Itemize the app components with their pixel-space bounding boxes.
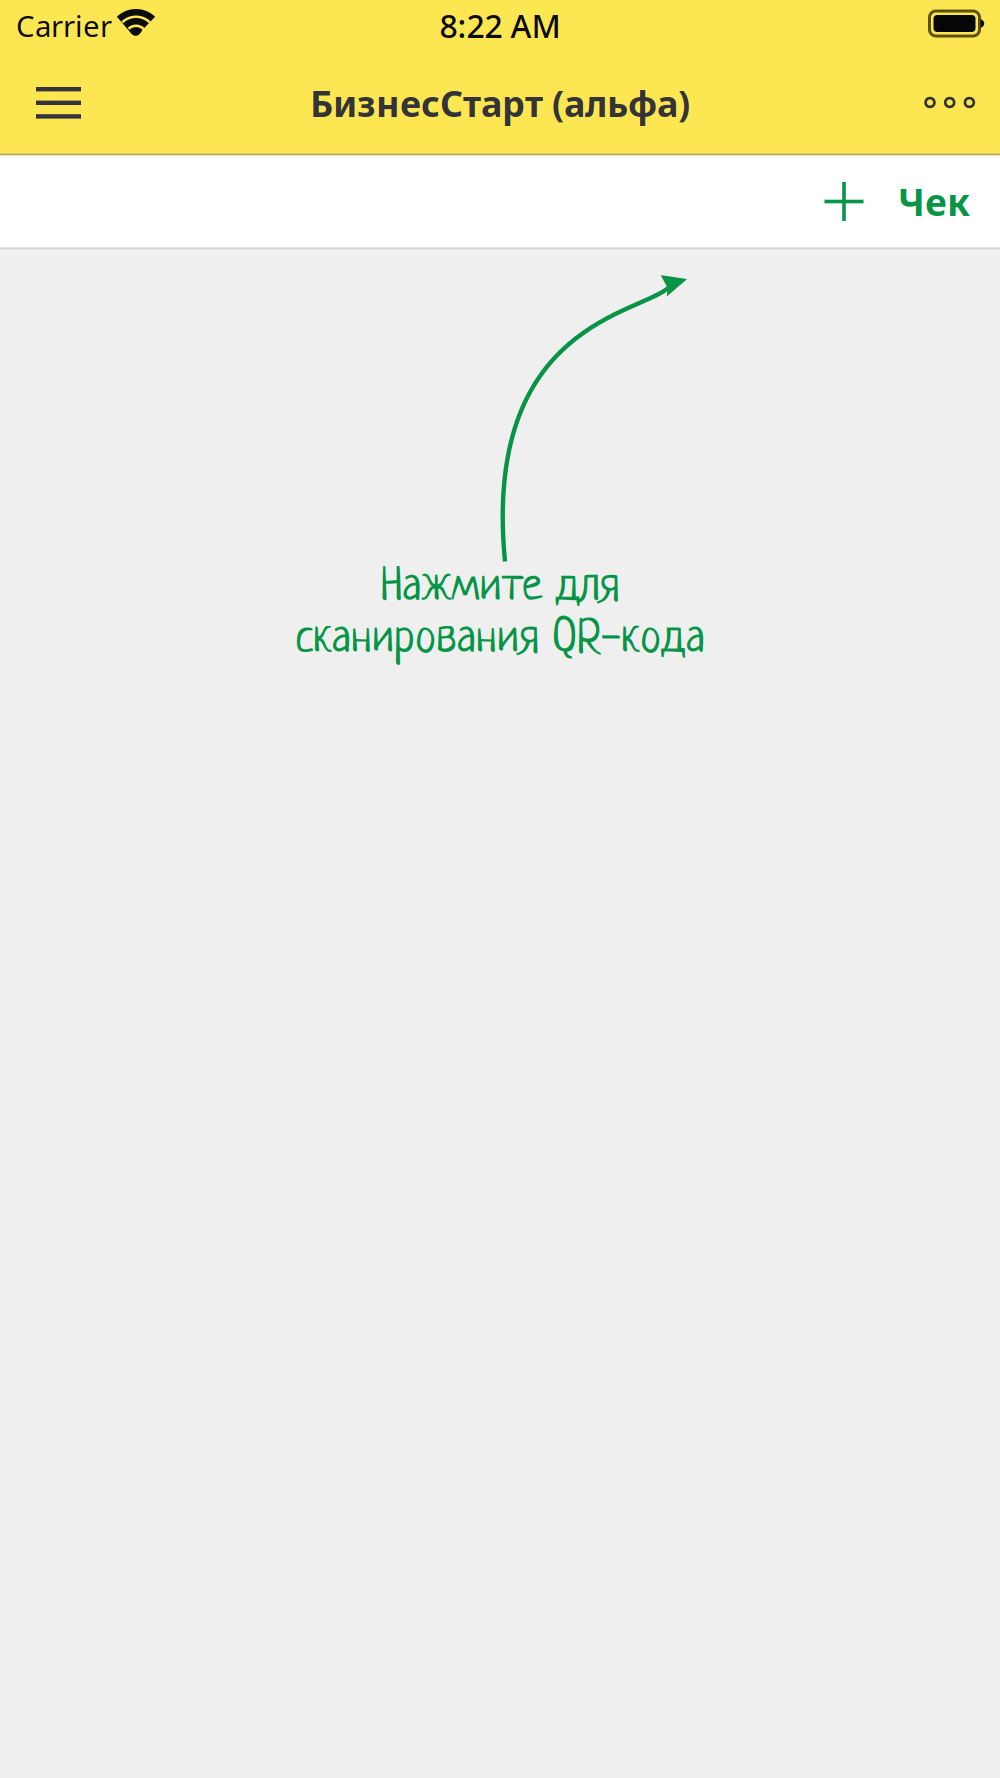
staticText: 8:22 AM bbox=[439, 4, 560, 47]
button[interactable]: Чек bbox=[805, 155, 984, 247]
staticText: Carrier bbox=[16, 6, 112, 45]
button[interactable]: Menu bbox=[0, 53, 117, 153]
staticText: БизнесСтарт (альфа) bbox=[310, 79, 690, 127]
staticText: Чек bbox=[898, 177, 970, 226]
staticText: Нажмите для bbox=[380, 563, 619, 613]
staticText: сканирования QR-кода bbox=[295, 615, 705, 665]
button[interactable]: More options bbox=[899, 53, 1000, 153]
